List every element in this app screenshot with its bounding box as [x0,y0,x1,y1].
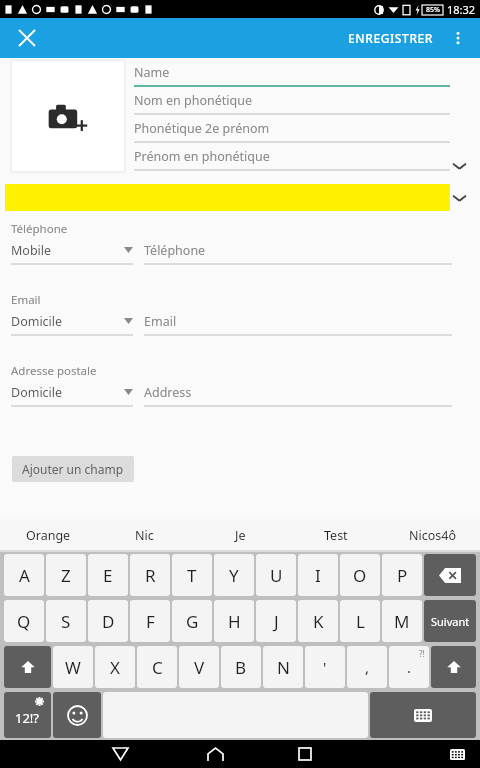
staticText: T [187,564,197,587]
staticText: Domicile [11,384,63,401]
button[interactable]: Domicile [11,382,133,407]
button[interactable]: Nic [96,519,192,552]
button[interactable]: Recents [285,740,325,768]
button[interactable]: Expand name fields [446,160,472,172]
button[interactable]: Mobile [11,240,133,265]
button[interactable]: W [53,646,93,688]
button[interactable]: Domicile [11,311,133,336]
staticText: V [194,656,205,679]
staticText: C [152,656,163,679]
button[interactable]: Q [4,600,44,642]
button[interactable]: Z [46,554,86,596]
button[interactable]: R [130,554,170,596]
button[interactable]: U [256,554,296,596]
staticText: R [145,564,156,587]
button[interactable]: . [389,646,429,688]
button[interactable]: B [221,646,261,688]
button[interactable]: Address [144,382,452,407]
button[interactable]: Backspace [424,554,476,596]
staticText: ?! [419,648,425,659]
staticText: Je [235,527,246,544]
button[interactable]: V [179,646,219,688]
staticText: M [394,610,410,633]
button[interactable]: I [298,554,338,596]
staticText: ' [323,657,327,677]
button[interactable]: Back [100,740,140,768]
button[interactable]: Home [195,740,235,768]
staticText: Y [229,564,239,587]
button[interactable]: Orange [0,519,96,552]
staticText: Suivant [431,614,470,629]
staticText: S [61,610,71,633]
button[interactable]: Symbols [4,692,51,738]
button[interactable]: D [88,600,128,642]
button[interactable]: Close [10,21,44,55]
button[interactable]: More options [442,22,474,54]
staticText: A [19,564,30,587]
staticText: U [270,564,283,587]
button[interactable]: N [263,646,303,688]
staticText: Orange [26,527,71,544]
staticText: O [353,564,367,587]
button[interactable]: Expand [446,185,472,211]
staticText: Address [144,384,192,401]
button[interactable]: Y [214,554,254,596]
button[interactable]: G [172,600,212,642]
button[interactable]: Emoji [53,692,101,738]
button[interactable]: , [347,646,387,688]
button[interactable]: L [340,600,380,642]
button[interactable]: S [46,600,86,642]
button[interactable]: Shift [4,646,51,688]
button[interactable]: Nicos4ô [384,519,480,552]
staticText: ENREGISTRER [348,30,434,46]
button[interactable]: Shift [431,646,476,688]
staticText: N [277,656,290,679]
button[interactable]: Next [424,600,476,642]
button[interactable]: Email [144,311,452,336]
staticText: 85% [426,5,440,15]
staticText: F [146,610,155,633]
staticText: Téléphone [11,221,68,237]
button[interactable]: J [256,600,296,642]
button[interactable]: Test [288,519,384,552]
staticText: Prénom en phonétique [134,148,270,165]
button[interactable]: C [137,646,177,688]
staticText: Phonétique 2e prénom [134,120,270,137]
button[interactable]: ' [305,646,345,688]
button[interactable]: A [4,554,44,596]
staticText: G [186,610,199,633]
button[interactable]: F [130,600,170,642]
button[interactable]: Switch keyboard [442,740,472,768]
staticText: Q [17,610,31,633]
button[interactable]: Add photo [11,60,125,172]
button[interactable]: ENREGISTRER [342,24,440,52]
button[interactable]: E [88,554,128,596]
button[interactable]: Téléphone [144,240,452,265]
staticText: Téléphone [144,242,206,259]
button[interactable]: H [214,600,254,642]
button[interactable]: P [382,554,422,596]
button[interactable]: Je [192,519,288,552]
button[interactable]: Nom en phonétique [134,88,450,116]
staticText: P [397,564,408,587]
staticText: Email [11,292,41,308]
staticText: D [102,610,115,633]
button[interactable]: T [172,554,212,596]
staticText: E [103,564,113,587]
staticText: , [365,657,370,677]
staticText: Z [61,564,71,587]
button[interactable]: Ajouter un champ [12,456,134,482]
button[interactable]: X [95,646,135,688]
button[interactable]: K [298,600,338,642]
button[interactable]: Phonétique 2e prénom [134,116,450,144]
button[interactable]: Keyboard layout [370,692,476,738]
button[interactable]: O [340,554,380,596]
staticText: Mobile [11,242,52,259]
staticText: B [235,656,247,679]
button[interactable]: Prénom en phonétique [134,144,450,172]
button[interactable]: M [382,600,422,642]
button[interactable]: Name [134,60,450,88]
staticText: Name [134,64,170,81]
